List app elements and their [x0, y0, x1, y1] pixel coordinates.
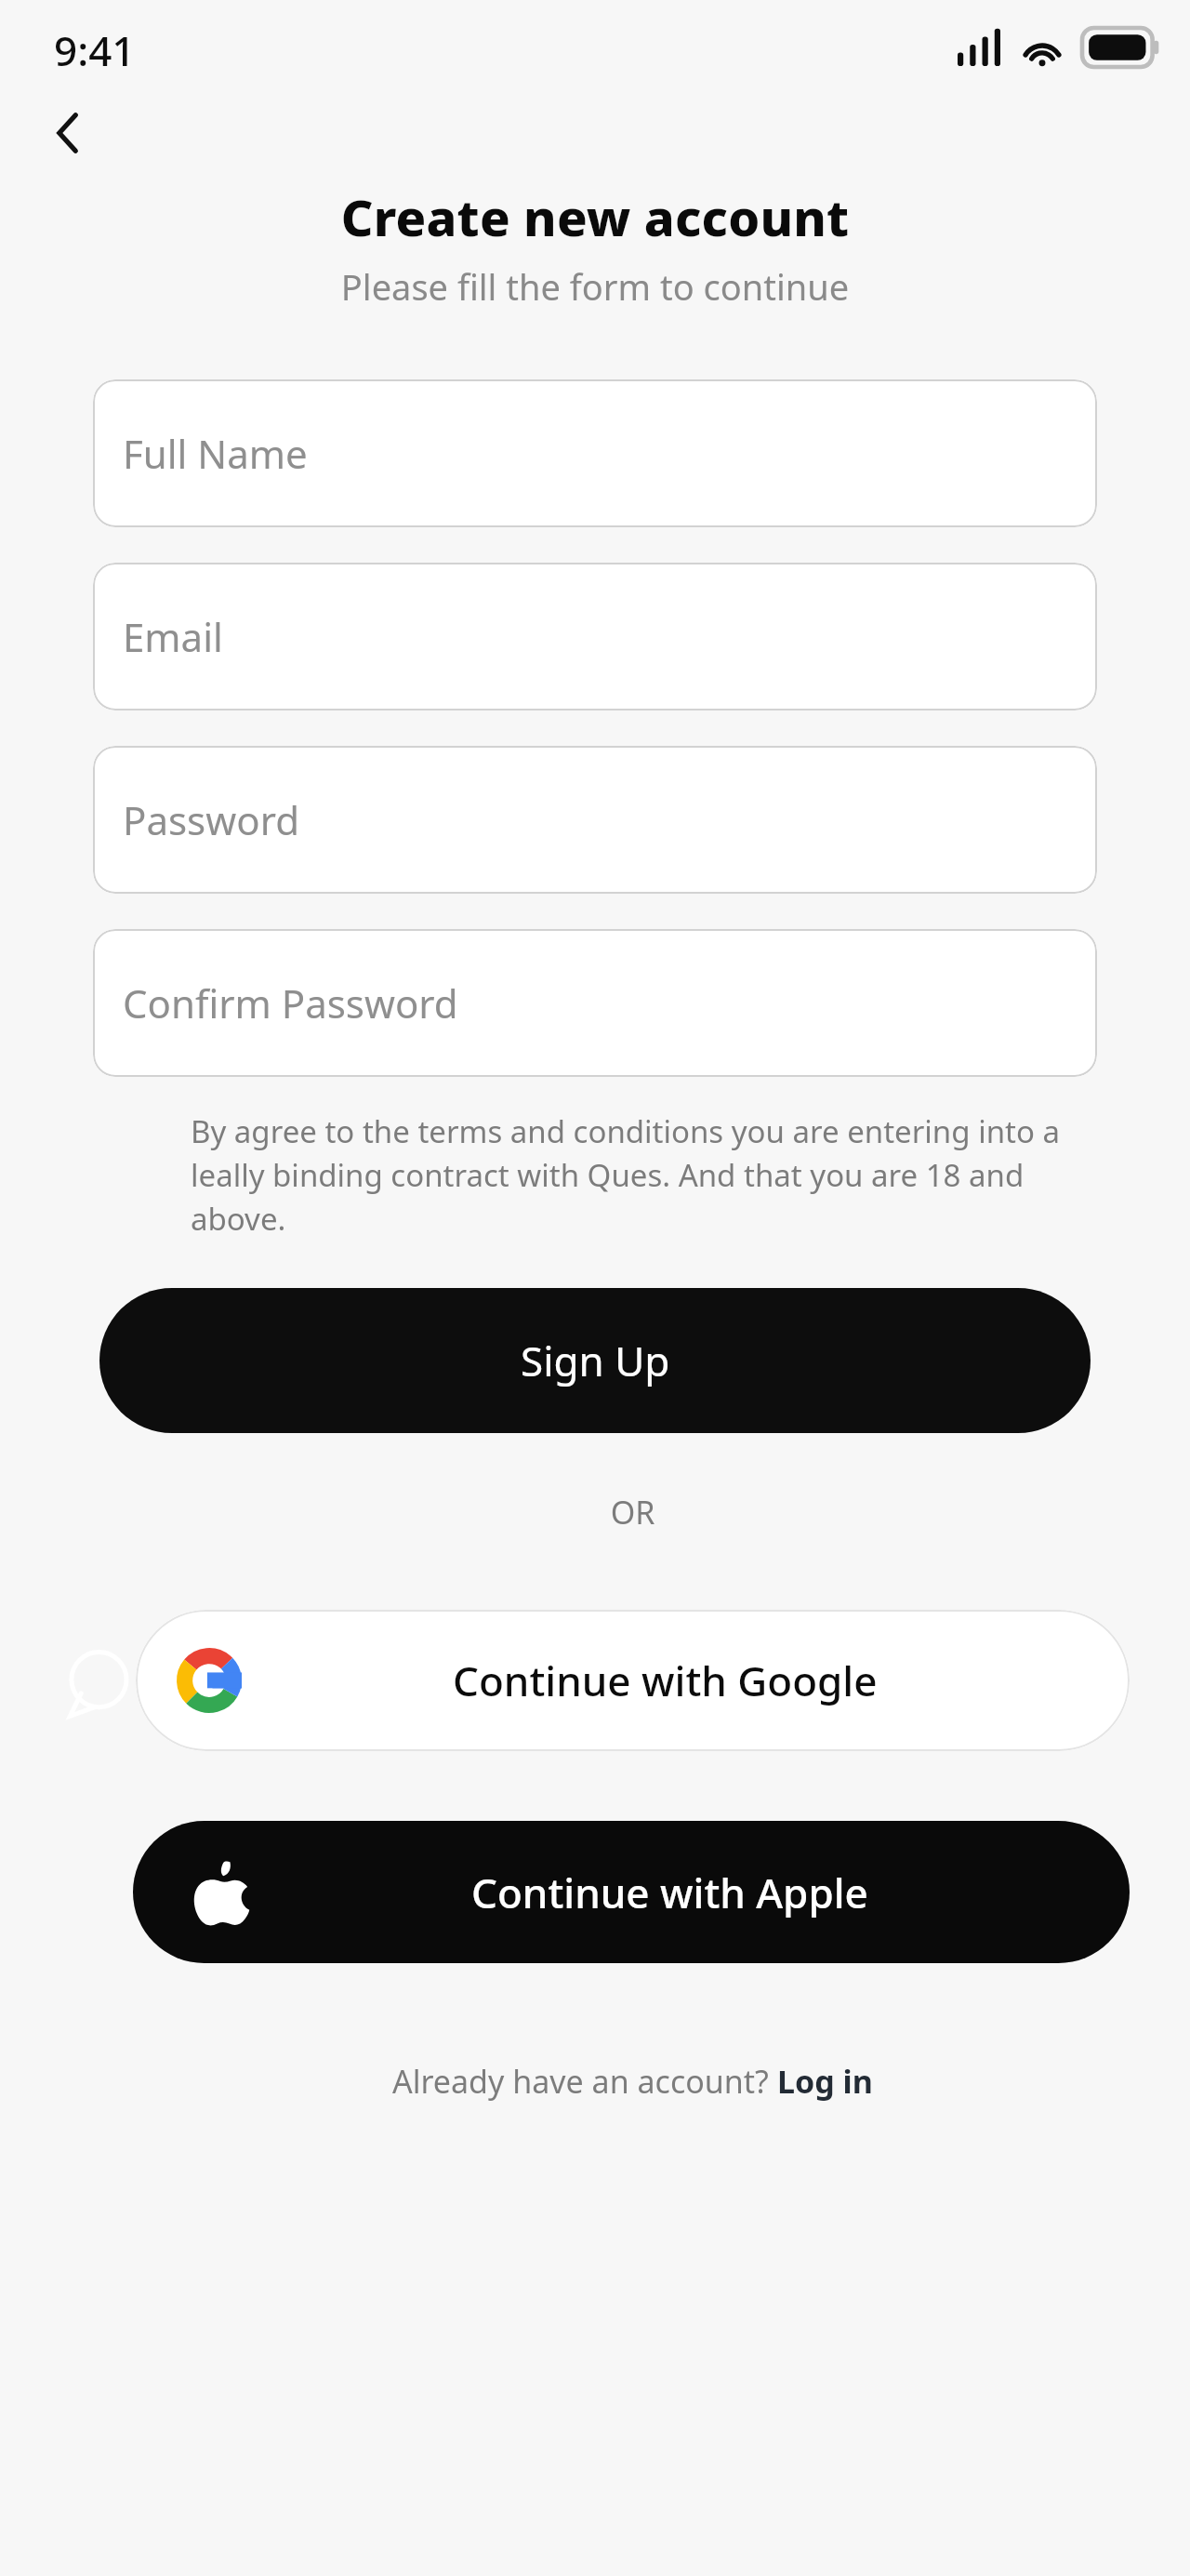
button[interactable]: Sign Up	[99, 1288, 1091, 1433]
staticText: Already have an account?	[392, 2060, 777, 2103]
staticText: OR	[136, 1491, 1130, 1534]
staticText: Full Name	[123, 427, 308, 480]
button[interactable]: Log in	[777, 2060, 873, 2103]
staticText: Email	[123, 610, 223, 663]
staticText: Create new account	[0, 182, 1190, 251]
staticText: Sign Up	[521, 1333, 670, 1388]
button[interactable]: Continue with Apple	[133, 1821, 1130, 1963]
button[interactable]: Email	[93, 563, 1097, 710]
staticText: 9:41	[54, 22, 136, 78]
button[interactable]: Password	[93, 746, 1097, 894]
button[interactable]: Continue with Google	[136, 1610, 1130, 1751]
staticText: Confirm Password	[123, 976, 458, 1029]
staticText: By agree to the terms and conditions you…	[191, 1110, 1090, 1240]
staticText: Continue with Apple	[471, 1865, 868, 1920]
staticText: Password	[123, 793, 299, 846]
button[interactable]: Full Name	[93, 379, 1097, 527]
staticText: Log in	[777, 2060, 873, 2103]
staticText: Please fill the form to continue	[0, 262, 1190, 311]
button[interactable]: Back	[28, 93, 108, 173]
button[interactable]: Confirm Password	[93, 929, 1097, 1077]
staticText: Continue with Google	[453, 1653, 878, 1708]
